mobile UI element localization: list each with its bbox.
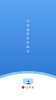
staticText: 欢 [26, 19, 29, 23]
staticText: 务 [26, 50, 29, 53]
staticText: 使 [26, 28, 29, 31]
staticText: 慧 [26, 41, 29, 44]
staticText: 公司名 [26, 86, 35, 89]
staticText: 智 [26, 37, 29, 40]
staticText: 服 [26, 45, 29, 49]
staticText: 迎 [26, 24, 29, 27]
staticText: 用 [26, 32, 29, 36]
